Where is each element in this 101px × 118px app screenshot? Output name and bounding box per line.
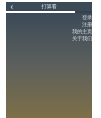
button[interactable]: 关于我们	[72, 35, 92, 42]
staticText: 登录	[82, 14, 92, 21]
button[interactable]: Back	[6, 2, 17, 11]
staticText: ‹	[10, 1, 12, 12]
button[interactable]: 注册	[82, 21, 92, 28]
staticText: 注册	[82, 21, 92, 28]
staticText: 打算看	[41, 3, 56, 10]
button[interactable]: 我的主页	[72, 28, 92, 35]
button[interactable]: 登录	[82, 14, 92, 21]
staticText: 关于我们	[72, 35, 92, 42]
staticText: 我的主页	[72, 28, 92, 35]
